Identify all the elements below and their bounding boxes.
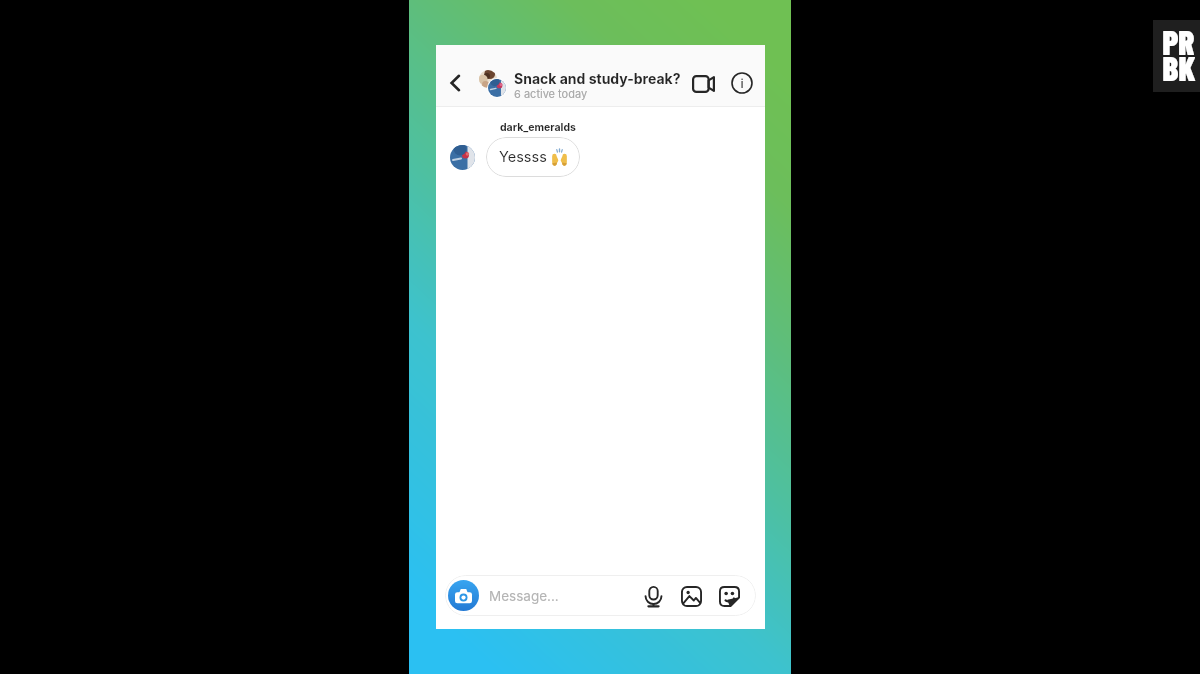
staticText: Yessss [499,148,547,166]
staticText: Snack and study-break? [514,70,681,87]
button[interactable]: Voice message [640,583,666,609]
button[interactable]: Sticker [716,583,742,609]
button[interactable]: Camera [448,580,479,611]
staticText: PR [1162,22,1195,62]
staticText: BK [1162,48,1196,88]
staticText: Message... [489,588,559,604]
staticText: dark_emeralds [500,121,576,134]
button[interactable]: Yessss [486,137,580,177]
button[interactable]: Conversation info [726,67,758,99]
staticText: i [740,76,744,91]
button[interactable]: Back [440,68,470,98]
button[interactable]: Snack and study-break? [474,59,679,108]
button[interactable]: Gallery [678,583,704,609]
staticText: 6 active today [514,87,588,100]
button[interactable]: Video call [687,68,719,100]
button[interactable]: Message... [489,575,640,616]
